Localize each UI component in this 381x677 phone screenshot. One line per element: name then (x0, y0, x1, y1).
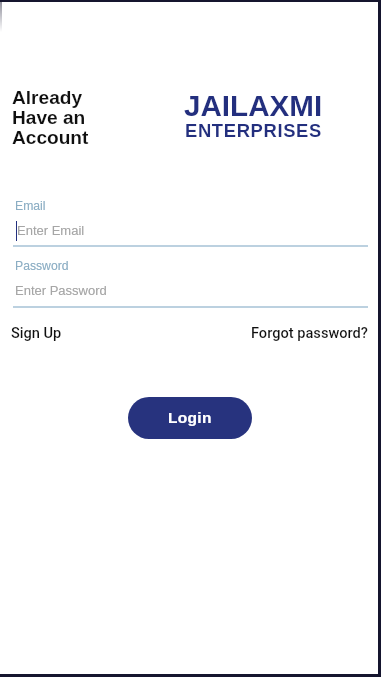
button[interactable]: Forgot password? (251, 324, 368, 341)
button[interactable]: Sign Up (11, 324, 62, 341)
staticText: Password (15, 259, 69, 273)
staticText: Login (168, 409, 212, 426)
staticText: Enter Email (17, 223, 85, 238)
staticText: Email (15, 199, 46, 213)
staticText: Enter Password (15, 283, 107, 298)
staticText: JAILAXMI (184, 89, 323, 122)
staticText: Already Have an Account (12, 87, 89, 148)
staticText: ENTERPRISES (185, 120, 322, 141)
button[interactable]: Login (128, 397, 252, 439)
